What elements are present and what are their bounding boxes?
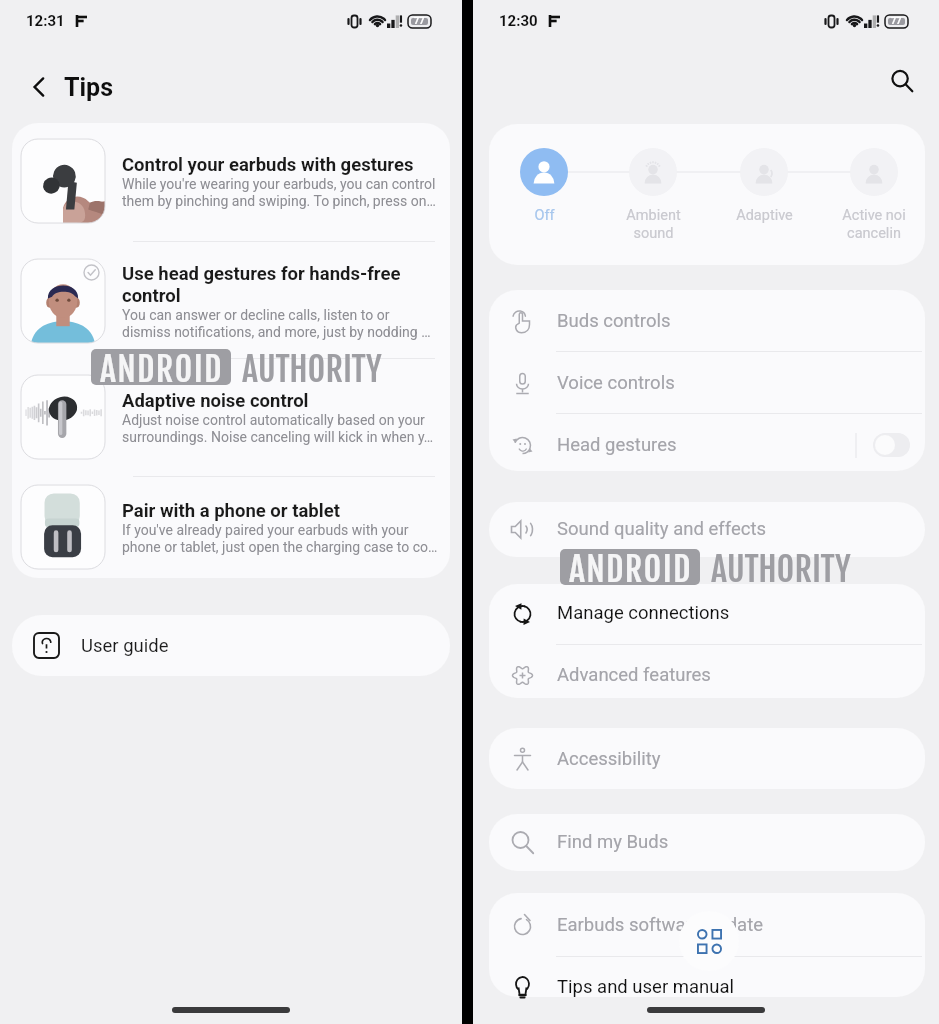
button[interactable]: Active noi cancelin <box>820 148 928 242</box>
staticText: Sound quality and effects <box>557 518 766 540</box>
staticText: Advanced features <box>557 664 711 686</box>
button[interactable]: Ambient sound <box>599 148 707 242</box>
staticText: 12:31 <box>26 12 65 30</box>
button[interactable]: Buds controls <box>489 291 925 351</box>
staticText: Voice controls <box>557 372 675 394</box>
button[interactable]: Head gestures <box>489 415 925 475</box>
button[interactable] <box>21 485 105 569</box>
button[interactable]: Off <box>490 148 598 224</box>
staticText: Find my Buds <box>557 831 669 853</box>
button[interactable] <box>21 139 105 223</box>
staticText: User guide <box>81 635 169 657</box>
button[interactable]: User guide <box>12 615 450 676</box>
staticText: Buds controls <box>557 310 671 332</box>
staticText: Earbuds software update <box>557 914 763 936</box>
button[interactable]: Sound quality and effects <box>489 499 925 559</box>
button[interactable]: Head gestures toggle <box>873 433 910 457</box>
button[interactable]: Accessibility <box>489 729 925 789</box>
staticText: Control your earbuds with gestures <box>122 154 414 176</box>
staticText: Adjust noise control automatically based… <box>122 412 438 446</box>
button[interactable]: Search <box>885 64 919 98</box>
staticText: Tips <box>64 73 114 102</box>
staticText: Tips and user manual <box>557 976 735 998</box>
button[interactable]: Adaptive <box>710 148 818 224</box>
staticText: AUTHORITY <box>242 348 382 384</box>
button[interactable]: Find my Buds <box>489 812 925 872</box>
button[interactable]: Advanced features <box>489 645 925 705</box>
button[interactable]: Manage connections <box>489 583 925 643</box>
staticText: 77 <box>414 16 425 27</box>
staticText: ANDROID <box>569 549 692 584</box>
button[interactable] <box>21 375 105 459</box>
button[interactable]: Back <box>22 70 56 104</box>
button[interactable]: Use head gestures for hands-free control <box>122 259 438 344</box>
staticText: Ambient sound <box>626 207 681 242</box>
button[interactable]: Pair with a phone or tablet <box>122 485 438 570</box>
staticText: 77 <box>891 16 902 27</box>
staticText: 12:30 <box>499 12 538 30</box>
button[interactable]: Control your earbuds with gestures <box>122 139 438 224</box>
staticText: ANDROID <box>100 349 223 384</box>
staticText: Off <box>534 207 555 224</box>
staticText: Use head gestures for hands-free control <box>122 263 438 307</box>
staticText: Adaptive noise control <box>122 390 309 412</box>
button[interactable] <box>21 259 105 343</box>
button[interactable]: Tips and user manual <box>489 957 925 1017</box>
staticText: Accessibility <box>557 748 661 770</box>
staticText: AUTHORITY <box>711 548 851 584</box>
staticText: While you're wearing your earbuds, you c… <box>122 176 438 210</box>
staticText: Adaptive <box>736 207 793 224</box>
staticText: Active noi cancelin <box>842 207 906 242</box>
button[interactable]: Adaptive noise control <box>122 375 438 460</box>
button[interactable]: Apps <box>679 911 739 971</box>
staticText: Manage connections <box>557 602 730 624</box>
staticText: You can answer or decline calls, listen … <box>122 307 438 341</box>
staticText: Pair with a phone or tablet <box>122 500 340 522</box>
button[interactable]: Earbuds software update <box>489 895 925 955</box>
staticText: Head gestures <box>557 434 677 456</box>
staticText: If you've already paired your earbuds wi… <box>122 522 438 556</box>
button[interactable]: Voice controls <box>489 353 925 413</box>
